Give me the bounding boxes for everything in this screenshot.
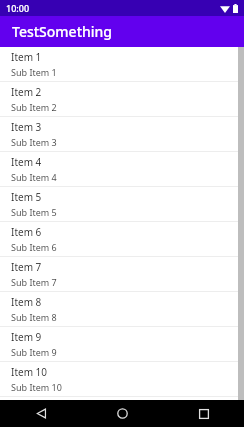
- staticText: Item 7: [11, 260, 42, 274]
- staticText: Item 4: [11, 155, 42, 169]
- staticText: Item 1: [11, 50, 42, 64]
- staticText: Sub Item 8: [11, 311, 57, 323]
- staticText: 10:00: [6, 2, 30, 14]
- staticText: Sub Item 1: [11, 66, 57, 78]
- button[interactable]: Item 8: [0, 292, 238, 327]
- button[interactable]: Item 7: [0, 257, 238, 292]
- button[interactable]: Item 5: [0, 187, 238, 222]
- staticText: Sub Item 10: [11, 381, 62, 393]
- staticText: Sub Item 5: [11, 206, 57, 218]
- staticText: Sub Item 4: [11, 171, 57, 183]
- button[interactable]: Back: [0, 400, 82, 427]
- button[interactable]: Recent apps: [163, 400, 244, 427]
- staticText: Item 9: [11, 330, 42, 344]
- staticText: Sub Item 2: [11, 101, 57, 113]
- staticText: Item 3: [11, 120, 42, 134]
- staticText: Sub Item 3: [11, 136, 57, 148]
- staticText: Sub Item 7: [11, 276, 57, 288]
- button[interactable]: Item 4: [0, 152, 238, 187]
- staticText: Item 5: [11, 190, 42, 204]
- button[interactable]: Item 10: [0, 362, 238, 397]
- staticText: Sub Item 9: [11, 346, 57, 358]
- button[interactable]: Item 9: [0, 327, 238, 362]
- button[interactable]: Item 1: [0, 47, 238, 82]
- staticText: Item 10: [11, 365, 48, 379]
- staticText: Item 6: [11, 225, 42, 239]
- button[interactable]: Item 6: [0, 222, 238, 257]
- button[interactable]: Item 3: [0, 117, 238, 152]
- button[interactable]: Home: [82, 400, 163, 427]
- staticText: Item 8: [11, 295, 42, 309]
- button[interactable]: Item 2: [0, 82, 238, 117]
- staticText: Item 2: [11, 85, 42, 99]
- staticText: TestSomething: [12, 22, 113, 41]
- staticText: Sub Item 6: [11, 241, 57, 253]
